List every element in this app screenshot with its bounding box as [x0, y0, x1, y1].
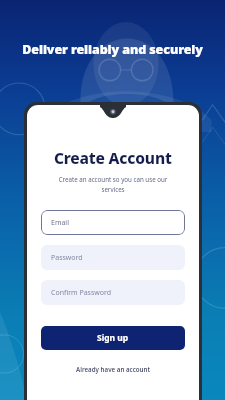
- staticText: Create Account: [54, 147, 172, 168]
- staticText: Already have an account: [76, 365, 150, 373]
- staticText: Create an account so you can use our ser…: [47, 175, 179, 194]
- button[interactable]: Already have an account: [70, 363, 156, 375]
- button[interactable]: Confirm Password: [41, 280, 185, 305]
- button[interactable]: Email: [41, 210, 185, 235]
- staticText: Password: [51, 253, 83, 263]
- staticText: Sign up: [97, 332, 129, 344]
- button[interactable]: Password: [41, 245, 185, 270]
- button[interactable]: Sign up: [41, 326, 185, 350]
- staticText: Deliver reliably and securely: [22, 41, 203, 58]
- staticText: Confirm Password: [51, 288, 112, 298]
- staticText: Email: [51, 218, 69, 228]
